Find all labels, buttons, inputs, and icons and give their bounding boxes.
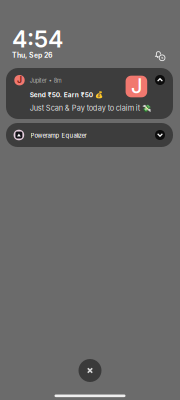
staticText: Send ₹50. Earn ₹50 💰 bbox=[30, 91, 103, 99]
staticText: Thu, Sep 26 bbox=[12, 51, 53, 59]
staticText: J bbox=[131, 74, 142, 98]
button[interactable]: Poweramp Equalizer bbox=[6, 123, 173, 147]
staticText: 4:54 bbox=[12, 25, 63, 53]
staticText: Jupiter • 8m bbox=[30, 77, 62, 84]
staticText: Just Scan & Pay today to claim it 💸 bbox=[30, 104, 151, 113]
button[interactable]: Notification Summary bbox=[155, 50, 177, 70]
staticText: J bbox=[17, 75, 22, 85]
staticText: Poweramp Equalizer bbox=[30, 132, 86, 139]
button[interactable]: J bbox=[6, 68, 173, 119]
button[interactable]: Clear notifications bbox=[78, 359, 101, 382]
